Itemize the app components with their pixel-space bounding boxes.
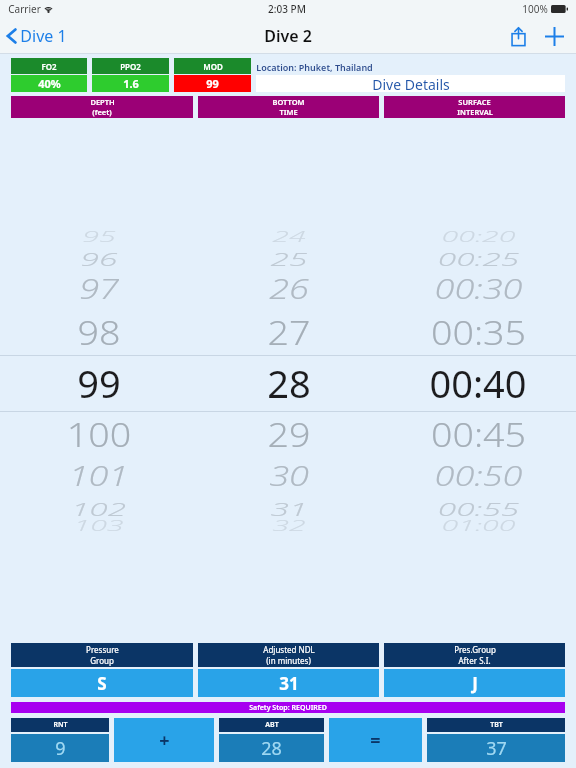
staticText: 28 <box>261 736 282 761</box>
staticText: 00:30 <box>434 271 523 307</box>
staticText: (in minutes) <box>266 655 311 666</box>
button[interactable]: Plus <box>114 718 214 762</box>
staticText: 99 <box>206 76 219 91</box>
button[interactable]: Dive Details <box>256 75 565 92</box>
staticText: 32 <box>272 517 306 535</box>
staticText: 97 <box>79 271 119 307</box>
button[interactable]: 95 <box>0 218 576 548</box>
staticText: 100% <box>522 2 548 16</box>
button[interactable]: FO2 <box>11 58 87 92</box>
staticText: 101 <box>69 458 128 494</box>
button[interactable]: ABT <box>219 718 324 762</box>
button[interactable]: Add dive <box>536 18 572 54</box>
staticText: Safety Stop: REQUIRED <box>249 703 327 713</box>
staticText: Pressure <box>86 644 119 655</box>
staticText: TIME <box>279 107 298 117</box>
staticText: 102 <box>71 495 126 521</box>
staticText: 96 <box>80 245 117 271</box>
staticText: 99 <box>77 357 121 409</box>
staticText: 00:45 <box>430 411 526 457</box>
button[interactable]: Pressure <box>11 643 193 667</box>
staticText: 31 <box>279 672 299 695</box>
staticText: Pres.Group <box>454 644 496 655</box>
button[interactable]: 31 <box>198 669 379 697</box>
staticText: 40% <box>38 76 61 91</box>
staticText: 01:00 <box>441 517 516 535</box>
staticText: Dive 2 <box>264 25 312 47</box>
staticText: 28 <box>267 357 311 409</box>
staticText: 24 <box>272 228 306 246</box>
staticText: MOD <box>203 61 223 72</box>
staticText: 95 <box>82 228 116 246</box>
staticText: INTERVAL <box>457 107 493 117</box>
staticText: 9 <box>55 736 66 761</box>
staticText: 26 <box>269 271 309 307</box>
button[interactable]: J <box>384 669 565 697</box>
staticText: 00:50 <box>434 458 523 494</box>
staticText: 31 <box>270 495 307 521</box>
button[interactable]: MOD <box>174 58 251 92</box>
staticText: 30 <box>269 458 309 494</box>
staticText: S <box>97 672 107 695</box>
button[interactable]: Adjusted NDL <box>198 643 379 667</box>
staticText: = <box>370 728 381 753</box>
staticText: SURFACE <box>458 97 491 107</box>
staticText: Dive Details <box>372 75 450 92</box>
staticText: 98 <box>77 309 121 355</box>
button[interactable]: SURFACE <box>384 96 565 118</box>
button[interactable]: RNT <box>11 718 109 762</box>
staticText: 25 <box>270 245 307 271</box>
button[interactable]: Pres.Group <box>384 643 565 667</box>
button[interactable]: TBT <box>427 718 565 762</box>
button[interactable]: BOTTOM <box>198 96 379 118</box>
button[interactable]: DEPTH <box>11 96 193 118</box>
staticText: Dive 1 <box>20 25 67 47</box>
staticText: ABT <box>265 720 279 730</box>
staticText: 00:40 <box>429 357 527 409</box>
staticText: 37 <box>486 736 507 761</box>
button[interactable]: Equals <box>329 718 422 762</box>
button[interactable]: Share <box>500 18 536 54</box>
staticText: 27 <box>267 309 311 355</box>
staticText: 29 <box>267 411 311 457</box>
button[interactable]: PPO2 <box>92 58 169 92</box>
button[interactable]: S <box>11 669 193 697</box>
staticText: Adjusted NDL <box>263 644 315 655</box>
staticText: Carrier <box>8 2 41 16</box>
staticText: Group <box>90 655 114 666</box>
staticText: 103 <box>73 517 124 535</box>
staticText: 1.6 <box>123 76 139 91</box>
staticText: + <box>159 728 170 753</box>
staticText: PPO2 <box>120 61 141 72</box>
staticText: BOTTOM <box>272 97 305 107</box>
staticText: After S.I. <box>458 655 491 666</box>
button[interactable]: Safety Stop: REQUIRED <box>11 702 565 713</box>
staticText: 2:03 PM <box>268 2 306 16</box>
staticText: 00:20 <box>441 228 516 246</box>
button[interactable]: Dive 1 <box>0 20 77 52</box>
staticText: 00:35 <box>430 309 526 355</box>
staticText: 00:25 <box>438 245 519 271</box>
staticText: Location: Phuket, Thailand <box>256 61 373 73</box>
staticText: 00:55 <box>438 495 519 521</box>
staticText: J <box>472 672 478 695</box>
staticText: (feet) <box>92 107 112 117</box>
staticText: RNT <box>53 720 68 730</box>
staticText: DEPTH <box>90 97 115 107</box>
staticText: FO2 <box>41 61 57 72</box>
staticText: TBT <box>490 720 503 730</box>
staticText: 100 <box>66 411 132 457</box>
